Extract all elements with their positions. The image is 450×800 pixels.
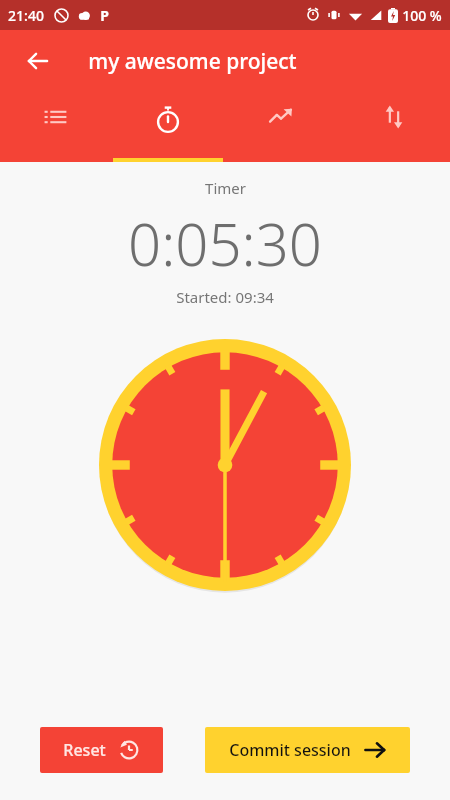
- staticText: 21:40: [8, 6, 44, 25]
- button[interactable]: Commit session: [205, 727, 410, 773]
- staticText: P: [100, 6, 109, 25]
- staticText: my awesome project: [88, 47, 297, 76]
- button[interactable]: Stats: [224, 92, 337, 162]
- staticText: Started: 09:34: [176, 287, 274, 307]
- button[interactable]: Back: [14, 37, 62, 85]
- staticText: Reset: [63, 739, 106, 761]
- staticText: 0:05:30: [128, 204, 322, 283]
- staticText: Timer: [205, 178, 246, 198]
- button[interactable]: Reset: [40, 727, 163, 773]
- button[interactable]: List: [0, 92, 112, 162]
- staticText: Commit session: [229, 739, 351, 761]
- staticText: 100 %: [402, 6, 442, 25]
- button[interactable]: Sort: [337, 92, 450, 162]
- button[interactable]: Timer: [112, 92, 224, 162]
